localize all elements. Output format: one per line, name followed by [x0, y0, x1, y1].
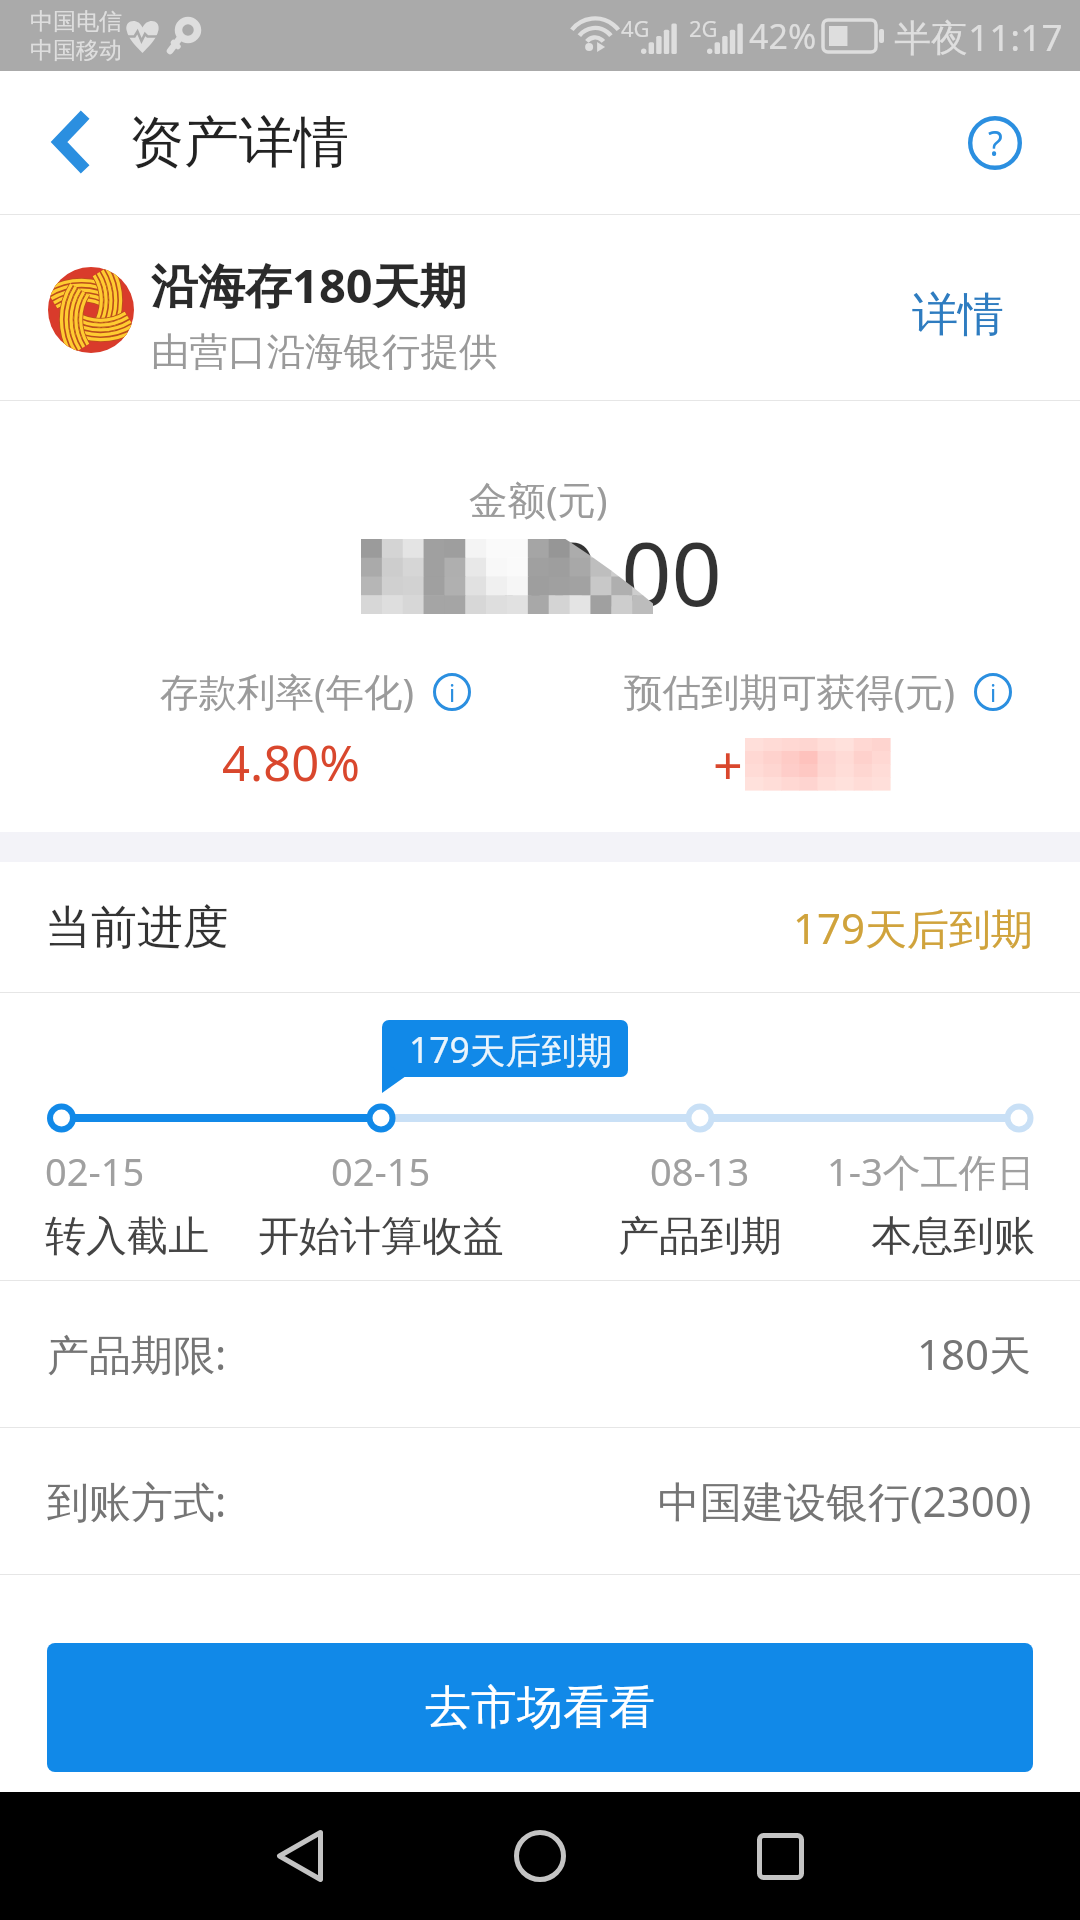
button[interactable]: Back: [240, 1796, 360, 1916]
staticText: 180天: [917, 1325, 1032, 1382]
staticText: 金额(元): [469, 473, 608, 526]
button[interactable]: Recents: [720, 1796, 840, 1916]
staticText: 半夜11:17: [894, 11, 1063, 62]
staticText: ?: [988, 120, 1003, 166]
button[interactable]: Home: [480, 1796, 600, 1916]
staticText: 存款利率(年化): [160, 665, 415, 718]
staticText: 42%: [749, 13, 817, 59]
staticText: 产品期限:: [47, 1325, 227, 1382]
staticText: i: [449, 676, 456, 709]
button[interactable]: Back: [20, 92, 120, 192]
staticText: 开始计算收益: [258, 1211, 504, 1263]
staticText: 详情: [912, 286, 1004, 344]
staticText: 4.80%: [222, 729, 360, 796]
staticText: 当前进度: [45, 899, 229, 957]
staticText: 179天后到期: [793, 899, 1034, 956]
button[interactable]: 产品期限:: [0, 1281, 1080, 1428]
staticText: 02-15: [331, 1145, 431, 1197]
staticText: 179天后到期: [409, 1025, 612, 1073]
staticText: 02-15: [45, 1145, 145, 1197]
staticText: 去市场看看: [425, 1679, 655, 1737]
staticText: 中国移动: [30, 36, 122, 65]
staticText: 沿海存180天期: [151, 253, 467, 317]
staticText: 中国电信: [30, 7, 122, 36]
staticText: 08-13: [650, 1145, 750, 1197]
staticText: 资产详情: [129, 108, 349, 177]
staticText: 产品到期: [618, 1211, 782, 1263]
staticText: 由营口沿海银行提供: [151, 328, 498, 377]
staticText: i: [990, 676, 997, 709]
staticText: 4G: [621, 13, 650, 43]
button[interactable]: 去市场看看: [47, 1643, 1033, 1772]
staticText: 预估到期可获得(元): [624, 665, 956, 718]
button[interactable]: 到账方式:: [0, 1428, 1080, 1575]
staticText: 转入截止: [45, 1211, 209, 1263]
staticText: 00.00: [497, 512, 722, 632]
button[interactable]: 详情: [912, 286, 1004, 344]
staticText: 中国建设银行(2300): [658, 1472, 1032, 1529]
button[interactable]: Help: [960, 108, 1030, 178]
staticText: 2G: [689, 13, 718, 43]
staticText: 到账方式:: [47, 1472, 227, 1529]
staticText: +: [713, 729, 743, 800]
staticText: 本息到账: [871, 1211, 1035, 1263]
staticText: 1-3个工作日: [827, 1145, 1035, 1197]
